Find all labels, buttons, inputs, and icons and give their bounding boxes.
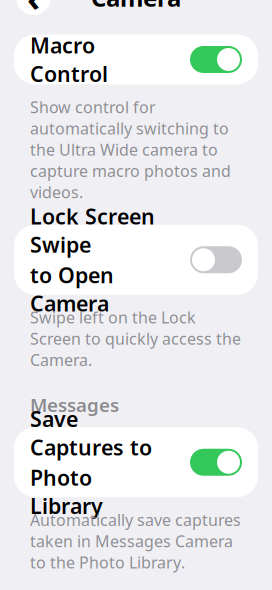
staticText: Messages: [30, 392, 119, 417]
button[interactable]: Lock Screen Swipe: [14, 225, 258, 295]
button[interactable]: Save Captures to: [14, 427, 258, 497]
button[interactable]: Macro Control: [14, 34, 258, 84]
button[interactable]: Back: [16, 0, 51, 15]
staticText: Camera: [91, 0, 181, 13]
staticText: Show control for automatically switching…: [30, 96, 231, 203]
staticText: to Open Camera: [30, 261, 114, 317]
staticText: ‹: [27, 0, 40, 21]
staticText: Photo Library: [30, 463, 103, 520]
staticText: Lock Screen Swipe: [30, 202, 155, 259]
staticText: Swipe left on the Lock Screen to quickly…: [30, 307, 241, 370]
staticText: Macro Control: [30, 31, 108, 88]
staticText: Save Captures to: [30, 405, 152, 461]
staticText: Automatically save captures taken in Mes…: [30, 509, 241, 573]
